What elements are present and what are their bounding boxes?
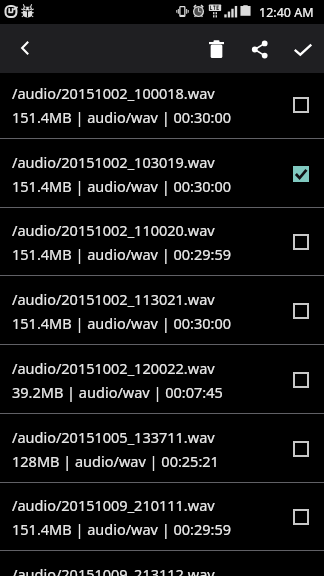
staticText: /audio/20151009_210111.wav bbox=[12, 495, 215, 515]
button[interactable]: /audio/20151002_113021.wav bbox=[0, 276, 324, 345]
button[interactable]: Select file bbox=[293, 234, 309, 250]
staticText: 151.4MB | audio/wav | 00:30:00 bbox=[12, 313, 232, 333]
button[interactable]: Select file bbox=[293, 303, 309, 319]
staticText: 151.4MB | audio/wav | 00:30:00 bbox=[12, 176, 232, 196]
staticText: 39.2MB | audio/wav | 00:07:45 bbox=[12, 382, 223, 402]
button[interactable]: Delete bbox=[196, 29, 236, 69]
staticText: 128MB | audio/wav | 00:25:21 bbox=[12, 451, 219, 471]
button[interactable]: Back bbox=[8, 30, 44, 66]
button[interactable]: /audio/20151002_120022.wav bbox=[0, 345, 324, 414]
button[interactable]: /audio/20151002_103019.wav bbox=[0, 139, 324, 208]
button[interactable]: Confirm selection bbox=[283, 29, 323, 69]
button[interactable]: /audio/20151002_110020.wav bbox=[0, 207, 324, 276]
button[interactable]: /audio/20151009_210111.wav bbox=[0, 482, 324, 551]
staticText: /audio/20151002_120022.wav bbox=[12, 358, 215, 378]
staticText: /audio/20151002_113021.wav bbox=[12, 289, 215, 309]
staticText: /audio/20151002_110020.wav bbox=[12, 220, 215, 240]
button[interactable]: Select file bbox=[293, 97, 309, 113]
staticText: 151.4MB | audio/wav | 00:29:59 bbox=[12, 244, 232, 264]
button[interactable]: Select file bbox=[293, 509, 309, 525]
button[interactable]: Select file bbox=[293, 372, 309, 388]
staticText: /audio/20151009_213112.wav bbox=[12, 564, 215, 576]
button[interactable]: Select file bbox=[293, 166, 309, 182]
button[interactable]: /audio/20151002_100018.wav bbox=[0, 70, 324, 139]
button[interactable]: /audio/20151009_213112.wav bbox=[0, 551, 324, 576]
staticText: 151.4MB | audio/wav | 00:30:00 bbox=[12, 107, 232, 127]
staticText: /audio/20151002_100018.wav bbox=[12, 83, 215, 103]
staticText: 151.4MB | audio/wav | 00:29:59 bbox=[12, 519, 232, 539]
staticText: /audio/20151002_103019.wav bbox=[12, 152, 215, 172]
staticText: /audio/20151005_133711.wav bbox=[12, 427, 215, 447]
button[interactable]: Select file bbox=[293, 441, 309, 457]
staticText: 12:40 AM bbox=[259, 4, 314, 21]
button[interactable]: /audio/20151005_133711.wav bbox=[0, 414, 324, 483]
button[interactable]: Share bbox=[240, 29, 280, 69]
